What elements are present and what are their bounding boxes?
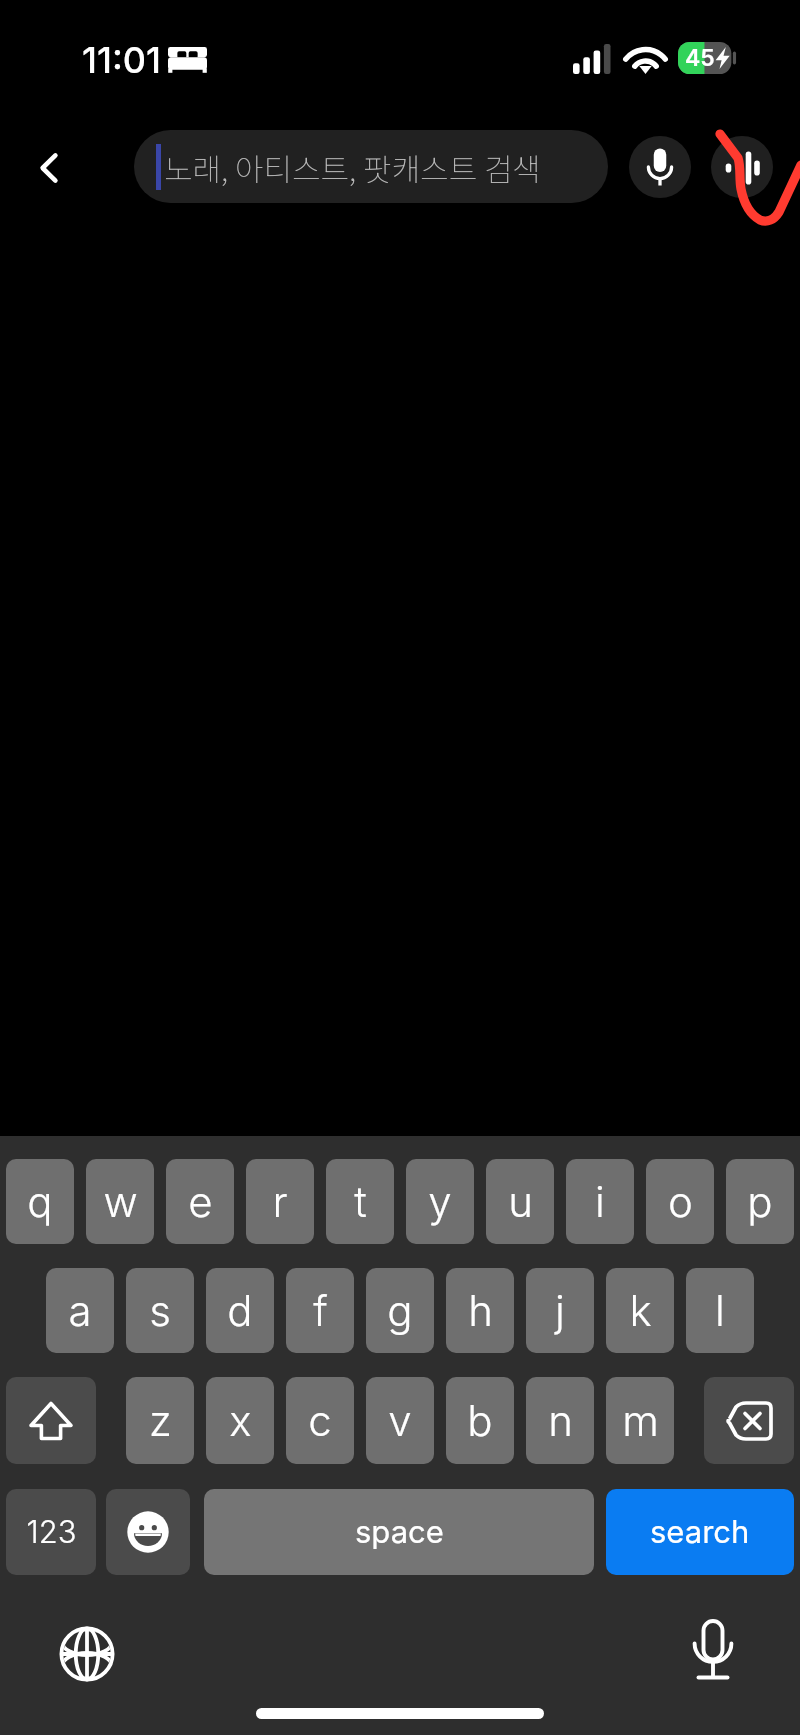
- staticText: 45: [685, 44, 715, 72]
- button[interactable]: Backspace: [704, 1377, 794, 1464]
- button[interactable]: space: [204, 1489, 594, 1575]
- button[interactable]: search: [606, 1489, 794, 1575]
- button[interactable]: Back: [14, 133, 83, 202]
- button[interactable]: b: [446, 1377, 514, 1464]
- button[interactable]: i: [566, 1159, 634, 1244]
- staticText: p: [747, 1176, 773, 1227]
- button[interactable]: Voice search: [629, 136, 691, 198]
- staticText: s: [149, 1285, 171, 1336]
- button[interactable]: k: [606, 1268, 674, 1353]
- staticText: i: [595, 1176, 605, 1227]
- staticText: e: [188, 1176, 213, 1227]
- staticText: 11:01: [82, 38, 161, 82]
- button[interactable]: z: [126, 1377, 194, 1464]
- button[interactable]: q: [6, 1159, 74, 1244]
- button[interactable]: v: [366, 1377, 434, 1464]
- staticText: a: [68, 1285, 92, 1336]
- staticText: x: [229, 1395, 252, 1446]
- button[interactable]: l: [686, 1268, 754, 1353]
- button[interactable]: s: [126, 1268, 194, 1353]
- staticText: b: [467, 1395, 493, 1446]
- button[interactable]: t: [326, 1159, 394, 1244]
- button[interactable]: 노래, 아티스트, 팟캐스트 검색: [134, 130, 608, 203]
- staticText: y: [428, 1176, 452, 1227]
- button[interactable]: e: [166, 1159, 234, 1244]
- staticText: g: [387, 1285, 413, 1336]
- button[interactable]: o: [646, 1159, 714, 1244]
- button[interactable]: Emoji: [106, 1489, 190, 1575]
- staticText: d: [227, 1285, 253, 1336]
- staticText: t: [354, 1176, 367, 1227]
- staticText: q: [27, 1176, 53, 1227]
- staticText: w: [103, 1176, 138, 1227]
- button[interactable]: r: [246, 1159, 314, 1244]
- staticText: u: [508, 1176, 533, 1227]
- button[interactable]: w: [86, 1159, 154, 1244]
- button[interactable]: d: [206, 1268, 274, 1353]
- staticText: j: [555, 1285, 565, 1336]
- button[interactable]: a: [46, 1268, 114, 1353]
- staticText: r: [272, 1176, 288, 1227]
- button[interactable]: h: [446, 1268, 514, 1353]
- staticText: l: [715, 1285, 725, 1336]
- staticText: v: [388, 1395, 412, 1446]
- staticText: c: [308, 1395, 332, 1446]
- staticText: search: [650, 1513, 750, 1551]
- button[interactable]: g: [366, 1268, 434, 1353]
- button[interactable]: c: [286, 1377, 354, 1464]
- staticText: space: [355, 1513, 444, 1551]
- button[interactable]: 123: [6, 1489, 96, 1575]
- button[interactable]: m: [606, 1377, 674, 1464]
- staticText: z: [149, 1395, 172, 1446]
- staticText: 123: [26, 1513, 77, 1551]
- staticText: m: [622, 1395, 659, 1446]
- staticText: k: [629, 1285, 652, 1336]
- button[interactable]: f: [286, 1268, 354, 1353]
- staticText: o: [668, 1176, 693, 1227]
- staticText: n: [548, 1395, 573, 1446]
- staticText: h: [468, 1285, 493, 1336]
- button[interactable]: j: [526, 1268, 594, 1353]
- button[interactable]: Change keyboard: [52, 1619, 122, 1689]
- button[interactable]: Sound search: [711, 136, 773, 198]
- button[interactable]: u: [486, 1159, 554, 1244]
- staticText: 노래, 아티스트, 팟캐스트 검색: [164, 145, 542, 190]
- button[interactable]: x: [206, 1377, 274, 1464]
- button[interactable]: y: [406, 1159, 474, 1244]
- button[interactable]: Dictate: [678, 1616, 748, 1686]
- button[interactable]: Shift: [6, 1377, 96, 1464]
- button[interactable]: p: [726, 1159, 794, 1244]
- button[interactable]: n: [526, 1377, 594, 1464]
- staticText: f: [313, 1285, 328, 1336]
